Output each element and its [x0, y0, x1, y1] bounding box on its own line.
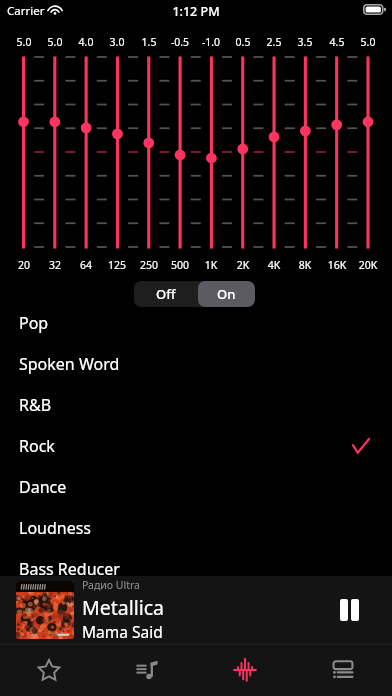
staticText: Rock — [19, 435, 55, 457]
button[interactable]: Радио Ultra — [0, 576, 392, 644]
staticText: R&B — [19, 394, 52, 416]
staticText: 1K — [193, 258, 229, 272]
staticText: 125 — [99, 258, 135, 272]
button[interactable]: On — [198, 281, 255, 307]
staticText: Dance — [19, 476, 67, 498]
staticText: 1:12 PM — [0, 3, 392, 20]
staticText: Радио Ultra — [82, 578, 140, 592]
button[interactable]: Equalizer — [196, 644, 294, 696]
staticText: 64 — [68, 258, 104, 272]
staticText: Mama Said — [82, 621, 163, 642]
staticText: Pop — [19, 312, 49, 334]
staticText: Metallica — [82, 594, 165, 621]
staticText: Spoken Word — [19, 353, 120, 375]
staticText: 2.5 — [256, 35, 292, 49]
button[interactable]: Playlists — [98, 644, 196, 696]
button[interactable]: Browse — [294, 644, 392, 696]
button[interactable]: Pop — [0, 302, 392, 343]
staticText: Off — [156, 285, 176, 303]
staticText: 5.0 — [350, 35, 386, 49]
staticText: 8K — [287, 258, 323, 272]
staticText: 4K — [256, 258, 292, 272]
button[interactable]: Spoken Word — [0, 343, 392, 384]
staticText: 2K — [225, 258, 261, 272]
button[interactable]: Radio — [0, 644, 98, 696]
staticText: Carrier — [7, 3, 45, 19]
button[interactable]: R&B — [0, 384, 392, 425]
staticText: -0.5 — [162, 35, 198, 49]
staticText: On — [217, 285, 236, 303]
button[interactable]: Off — [134, 281, 198, 307]
staticText: Loudness — [19, 517, 92, 539]
staticText: 4.5 — [319, 35, 355, 49]
button[interactable]: Dance — [0, 466, 392, 507]
staticText: 0.5 — [225, 35, 261, 49]
staticText: 16K — [319, 258, 355, 272]
staticText: 4.0 — [68, 35, 104, 49]
button[interactable]: Pause — [327, 588, 371, 632]
staticText: 1.5 — [131, 35, 167, 49]
staticText: 500 — [162, 258, 198, 272]
staticText: 3.5 — [287, 35, 323, 49]
button[interactable]: Rock — [0, 425, 392, 466]
staticText: 5.0 — [37, 35, 73, 49]
staticText: 20K — [350, 258, 386, 272]
staticText: 32 — [37, 258, 73, 272]
staticText: 3.0 — [99, 35, 135, 49]
staticText: 5.0 — [6, 35, 42, 49]
staticText: 250 — [131, 258, 167, 272]
staticText: 20 — [6, 258, 42, 272]
staticText: Bass Reducer — [19, 558, 120, 580]
button[interactable]: Loudness — [0, 507, 392, 548]
staticText: -1.0 — [193, 35, 229, 49]
button[interactable]: Bass Reducer — [0, 548, 392, 589]
